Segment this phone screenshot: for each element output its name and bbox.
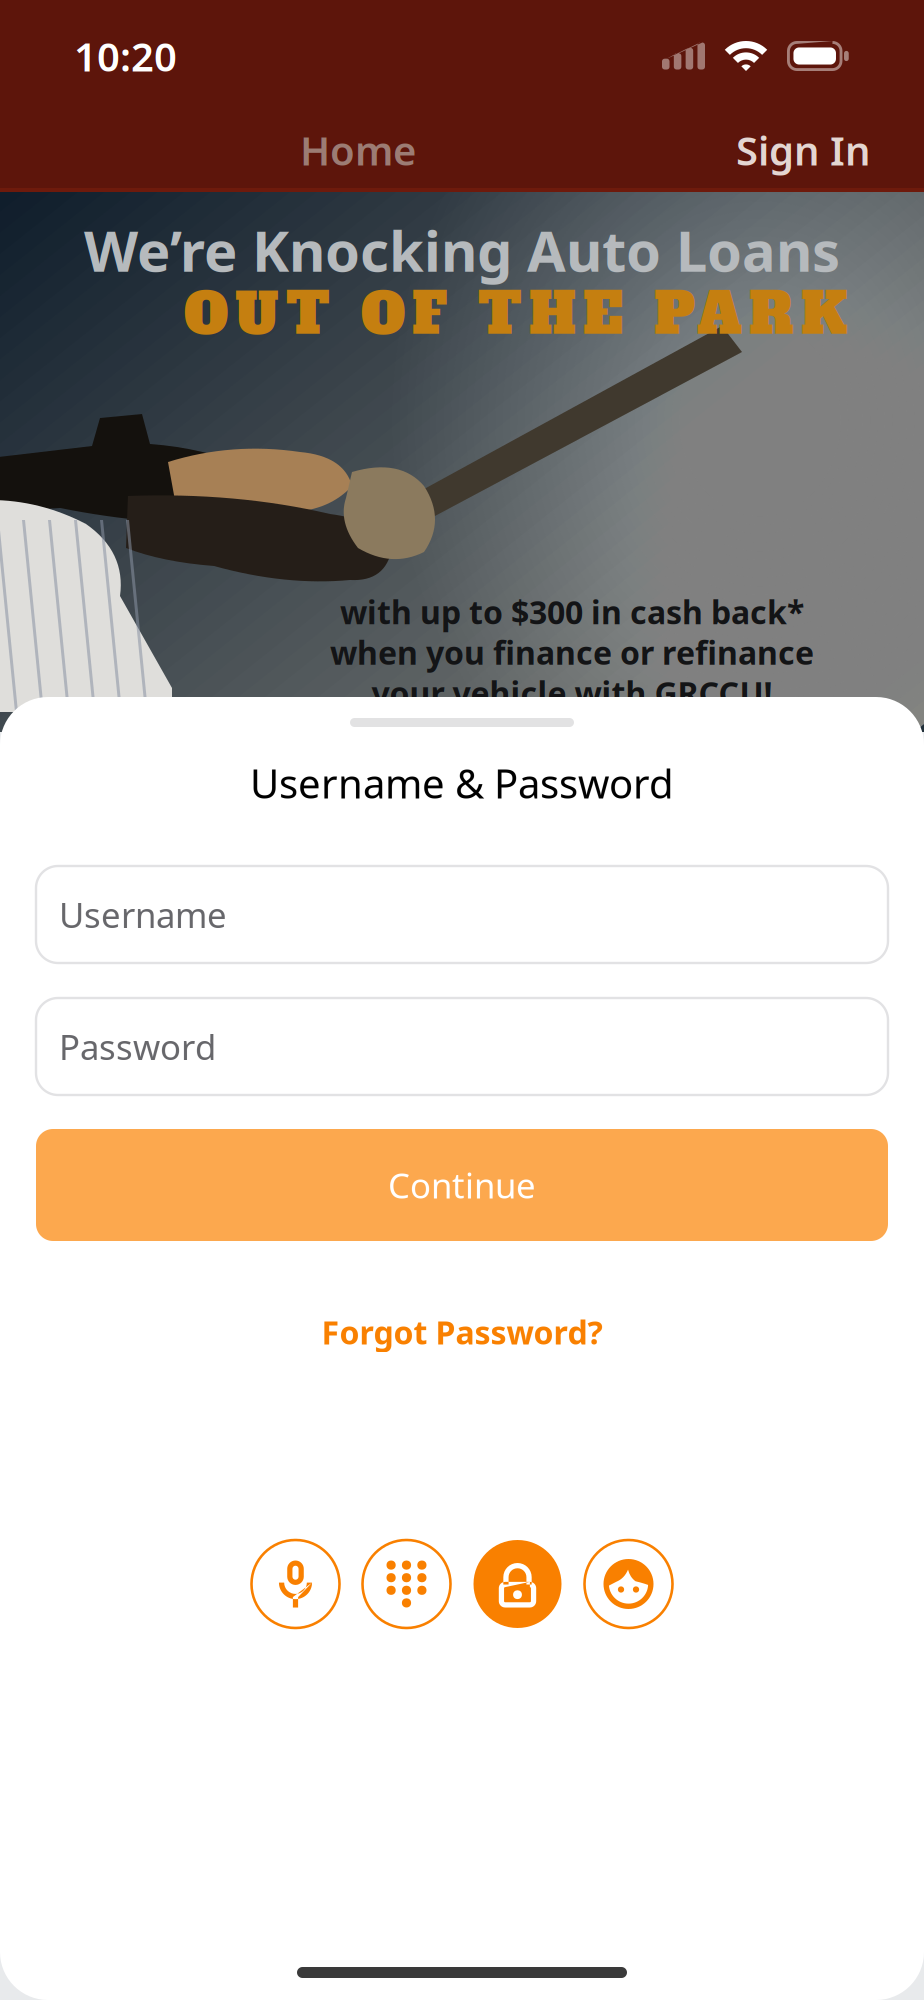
- staticText: Continue: [388, 1162, 536, 1208]
- staticText: Username & Password: [250, 756, 674, 809]
- button[interactable]: Sign In: [716, 113, 891, 186]
- button[interactable]: Username: [36, 866, 888, 963]
- staticText: your vehicle with GRCCU!: [371, 671, 772, 714]
- button[interactable]: Home: [280, 113, 436, 186]
- button[interactable]: Passcode sign in: [362, 1540, 450, 1628]
- staticText: Forgot Password?: [321, 1311, 602, 1353]
- staticText: with up to $300 in cash back*: [340, 590, 804, 633]
- staticText: Home: [300, 123, 416, 176]
- button[interactable]: Continue: [36, 1129, 888, 1241]
- staticText: 10:20: [74, 29, 177, 82]
- staticText: when you finance or refinance: [330, 631, 814, 673]
- staticText: Sign In: [736, 123, 871, 176]
- button[interactable]: Face ID sign in: [584, 1540, 672, 1628]
- staticText: Username: [59, 891, 227, 937]
- button[interactable]: Forgot Password?: [272, 1301, 652, 1363]
- button[interactable]: Password: [36, 998, 888, 1095]
- button[interactable]: Voice sign in: [251, 1540, 339, 1628]
- staticText: OUT OF THE PARK: [184, 276, 848, 352]
- staticText: We’re Knocking Auto Loans: [84, 213, 840, 287]
- staticText: Password: [59, 1023, 216, 1069]
- button[interactable]: Password sign in: [473, 1540, 561, 1628]
